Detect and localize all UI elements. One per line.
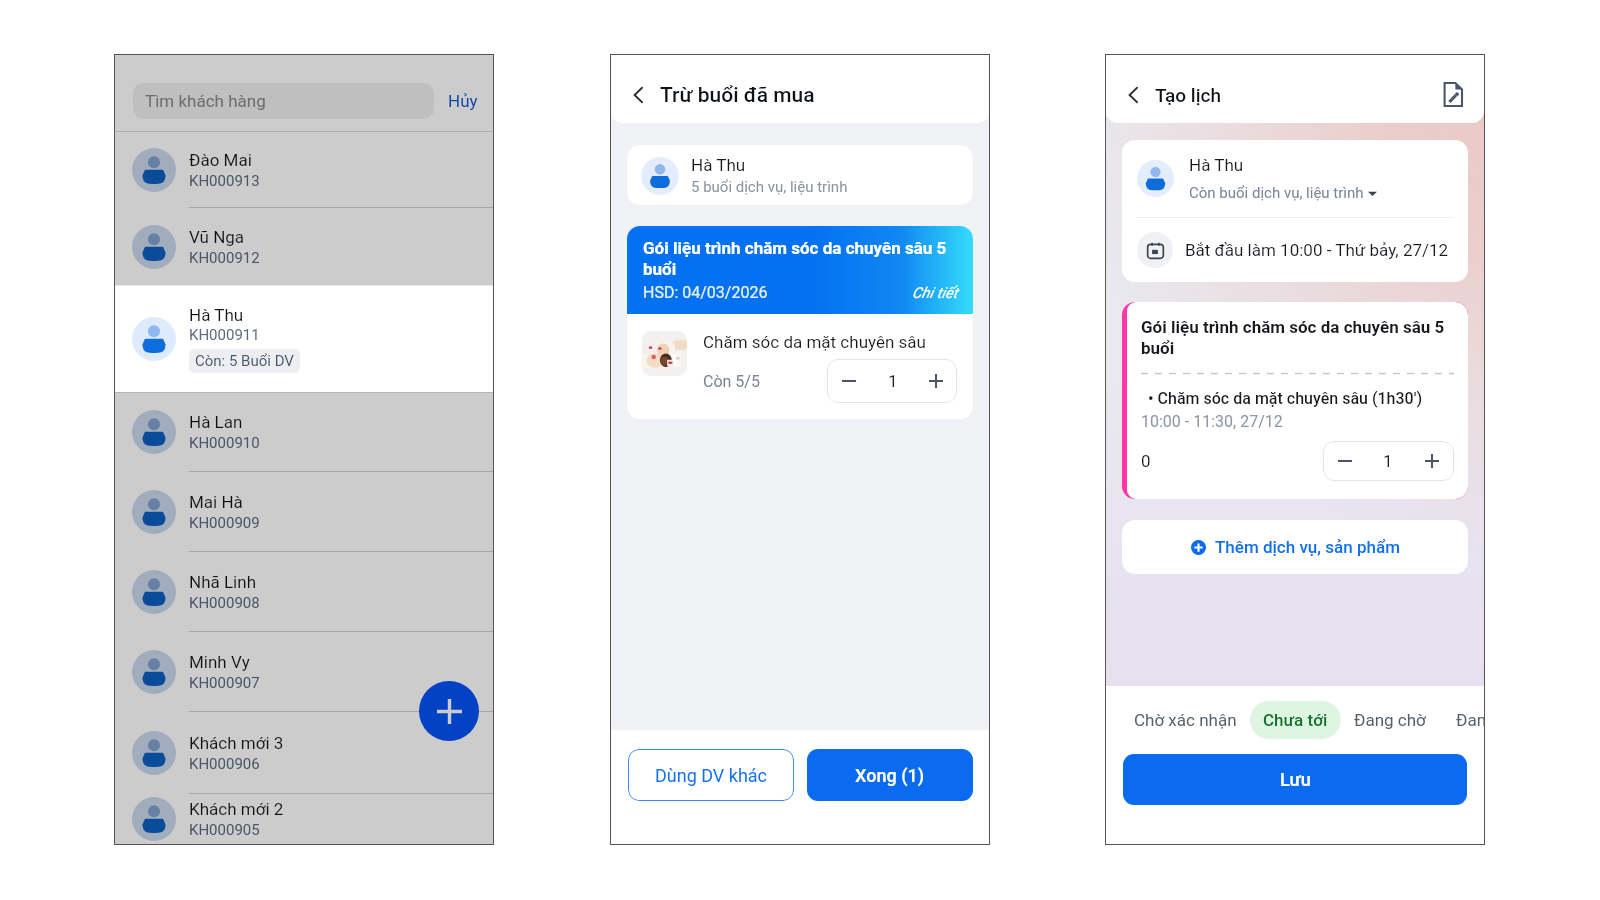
button[interactable]: Chưa tới bbox=[1250, 701, 1341, 739]
button[interactable]: Đang chờ xử lý bbox=[1456, 701, 1484, 739]
button[interactable]: Khách mới 2 bbox=[115, 794, 493, 844]
staticText: Dùng DV khác bbox=[655, 765, 768, 786]
staticText: Bắt đầu làm 10:00 - Thứ bảy, 27/12 bbox=[1185, 240, 1449, 260]
staticText: KH000907 bbox=[189, 674, 260, 692]
staticText: KH000911 bbox=[189, 326, 260, 344]
staticText: Hủy bbox=[448, 91, 478, 111]
staticText: Khách mới 3 bbox=[189, 733, 284, 753]
button[interactable]: Gói liệu trình chăm sóc da chuyên sâu 5 … bbox=[627, 226, 973, 314]
button[interactable]: Mai Hà bbox=[115, 472, 493, 551]
button[interactable]: Hà Thu bbox=[627, 145, 973, 205]
button[interactable]: Increase bbox=[914, 359, 957, 403]
staticText: Khách mới 2 bbox=[189, 799, 284, 819]
button[interactable]: Nhã Linh bbox=[115, 552, 493, 631]
staticText: Đang chờ bbox=[1354, 710, 1426, 730]
staticText: Nhã Linh bbox=[189, 572, 256, 592]
button[interactable]: Add customer bbox=[419, 681, 479, 741]
staticText: KH000909 bbox=[189, 514, 260, 532]
button[interactable]: Dùng DV khác bbox=[628, 749, 794, 801]
button[interactable]: Thêm dịch vụ, sản phẩm bbox=[1122, 520, 1468, 574]
staticText: Đang chờ xử lý bbox=[1456, 710, 1484, 730]
staticText: Chi tiết bbox=[912, 284, 958, 302]
staticText: HSD: 04/03/2026 bbox=[643, 283, 768, 302]
staticText: Tạo lịch bbox=[1155, 84, 1222, 106]
staticText: Hà Thu bbox=[1189, 155, 1244, 175]
staticText: Hà Thu bbox=[189, 305, 244, 325]
staticText: Còn: 5 Buổi DV bbox=[195, 352, 294, 370]
button[interactable]: Hủy bbox=[448, 91, 478, 111]
staticText: Gói liệu trình chăm sóc da chuyên sâu 5 … bbox=[1141, 317, 1454, 359]
staticText: Đào Mai bbox=[189, 150, 252, 170]
staticText: Thêm dịch vụ, sản phẩm bbox=[1215, 537, 1400, 557]
button[interactable]: Decrease bbox=[1323, 441, 1366, 481]
staticText: 1 bbox=[888, 371, 898, 391]
staticText: Tìm khách hàng bbox=[145, 91, 266, 111]
button[interactable]: Edit note bbox=[1443, 82, 1463, 107]
staticText: • Chăm sóc da mặt chuyên sâu (1h30') bbox=[1148, 389, 1423, 408]
button[interactable]: Khách mới 3 bbox=[115, 712, 493, 793]
staticText: Lưu bbox=[1280, 769, 1311, 790]
staticText: Còn 5/5 bbox=[703, 372, 760, 391]
staticText: Minh Vy bbox=[189, 652, 250, 672]
button[interactable]: Hà Thu bbox=[1137, 140, 1468, 217]
button[interactable]: Hà Thu bbox=[115, 286, 493, 392]
button[interactable]: Back bbox=[1123, 84, 1145, 106]
button[interactable]: Xong (1) bbox=[807, 749, 973, 801]
staticText: Chưa tới bbox=[1263, 710, 1328, 730]
staticText: 5 buổi dịch vụ, liệu trình bbox=[691, 178, 848, 196]
staticText: KH000908 bbox=[189, 594, 260, 612]
staticText: Trừ buổi đã mua bbox=[660, 83, 815, 108]
button[interactable]: Đang chờ bbox=[1346, 701, 1434, 739]
staticText: KH000905 bbox=[189, 821, 260, 839]
button[interactable]: Increase bbox=[1410, 441, 1454, 481]
button[interactable]: Hà Lan bbox=[115, 393, 493, 471]
staticText: Xong (1) bbox=[855, 765, 925, 786]
button[interactable]: Chờ xác nhận bbox=[1126, 701, 1245, 739]
staticText: Hà Lan bbox=[189, 412, 243, 432]
staticText: Gói liệu trình chăm sóc da chuyên sâu 5 … bbox=[643, 238, 958, 279]
staticText: 0 bbox=[1141, 451, 1151, 471]
staticText: KH000912 bbox=[189, 249, 260, 267]
staticText: KH000906 bbox=[189, 755, 260, 773]
button[interactable]: Minh Vy bbox=[115, 632, 493, 711]
staticText: KH000913 bbox=[189, 172, 260, 190]
staticText: Còn buổi dịch vụ, liệu trình bbox=[1189, 184, 1364, 202]
staticText: 1 bbox=[1383, 451, 1393, 471]
button[interactable]: Đào Mai bbox=[115, 132, 493, 207]
button[interactable]: Bắt đầu làm 10:00 - Thứ bảy, 27/12 bbox=[1137, 218, 1468, 282]
staticText: 10:00 - 11:30, 27/12 bbox=[1141, 412, 1283, 431]
staticText: Hà Thu bbox=[691, 155, 746, 175]
button[interactable]: Vũ Nga bbox=[115, 208, 493, 285]
staticText: Vũ Nga bbox=[189, 227, 245, 247]
button[interactable]: Decrease bbox=[827, 359, 871, 403]
staticText: KH000910 bbox=[189, 434, 260, 452]
button[interactable]: Lưu bbox=[1123, 754, 1467, 805]
button[interactable]: Back bbox=[628, 84, 650, 106]
staticText: Mai Hà bbox=[189, 492, 243, 512]
button[interactable]: Tìm khách hàng bbox=[133, 83, 434, 119]
staticText: Chăm sóc da mặt chuyên sâu bbox=[703, 332, 926, 352]
staticText: Chờ xác nhận bbox=[1134, 710, 1237, 730]
